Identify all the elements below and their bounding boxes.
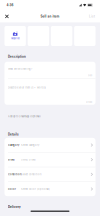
button[interactable]: Color [4, 182, 95, 196]
staticText: Select brand [21, 158, 36, 161]
button[interactable]: Category [4, 138, 95, 152]
button[interactable]: What are you selling? [4, 62, 95, 78]
button[interactable]: Condition [4, 167, 95, 181]
staticText: Color [8, 187, 16, 191]
staticText: Select condition [21, 173, 41, 176]
staticText: Add up to 3 hashtags (Optional) [8, 115, 41, 118]
staticText: Details [8, 133, 19, 136]
button[interactable]: List [86, 12, 98, 21]
staticText: Describe your item (5+ words) [8, 86, 46, 89]
staticText: 0/1000 [86, 101, 92, 103]
staticText: Category [8, 143, 19, 147]
staticText: Required [11, 37, 19, 40]
button[interactable]: Close [2, 11, 12, 21]
staticText: 0/80 [88, 74, 92, 77]
button[interactable]: Describe your item (5+ words) [4, 78, 95, 105]
staticText: Brand [8, 158, 15, 161]
button[interactable]: Brand [4, 152, 95, 167]
staticText: Select category [21, 143, 39, 147]
staticText: What are you selling? [8, 67, 32, 70]
staticText: 4:36 [6, 3, 13, 7]
staticText: Delivery [8, 205, 21, 209]
staticText: Select color (optional) [21, 187, 50, 191]
staticText: Description [8, 55, 26, 58]
button[interactable]: Add photo, required [4, 26, 26, 46]
staticText: Condition [8, 173, 21, 176]
staticText: List [89, 15, 95, 18]
staticText: Sell an item [40, 14, 59, 18]
